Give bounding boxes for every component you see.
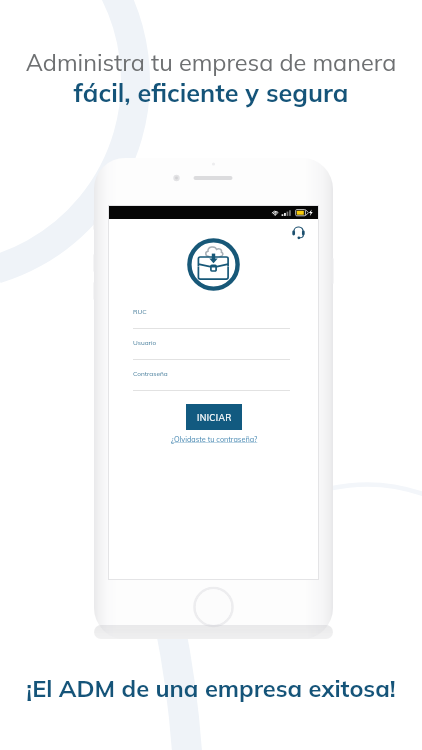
staticText: Administra tu empresa de manera — [0, 47, 422, 76]
staticText: Usuario — [133, 338, 157, 346]
button[interactable]: ¿Olvidaste tu contraseña? — [171, 435, 258, 444]
staticText: Contraseña — [133, 369, 168, 377]
button[interactable]: Usuario — [133, 337, 290, 368]
button[interactable]: Contraseña — [133, 368, 290, 399]
staticText: fácil, eficiente y segura — [0, 77, 422, 109]
button[interactable]: RUC — [133, 306, 290, 337]
staticText: ¡El ADM de una empresa exitosa! — [0, 673, 422, 703]
button[interactable]: Soporte — [292, 226, 305, 239]
button[interactable]: INICIAR — [186, 404, 242, 430]
staticText: INICIAR — [197, 412, 232, 423]
staticText: RUC — [133, 307, 147, 315]
